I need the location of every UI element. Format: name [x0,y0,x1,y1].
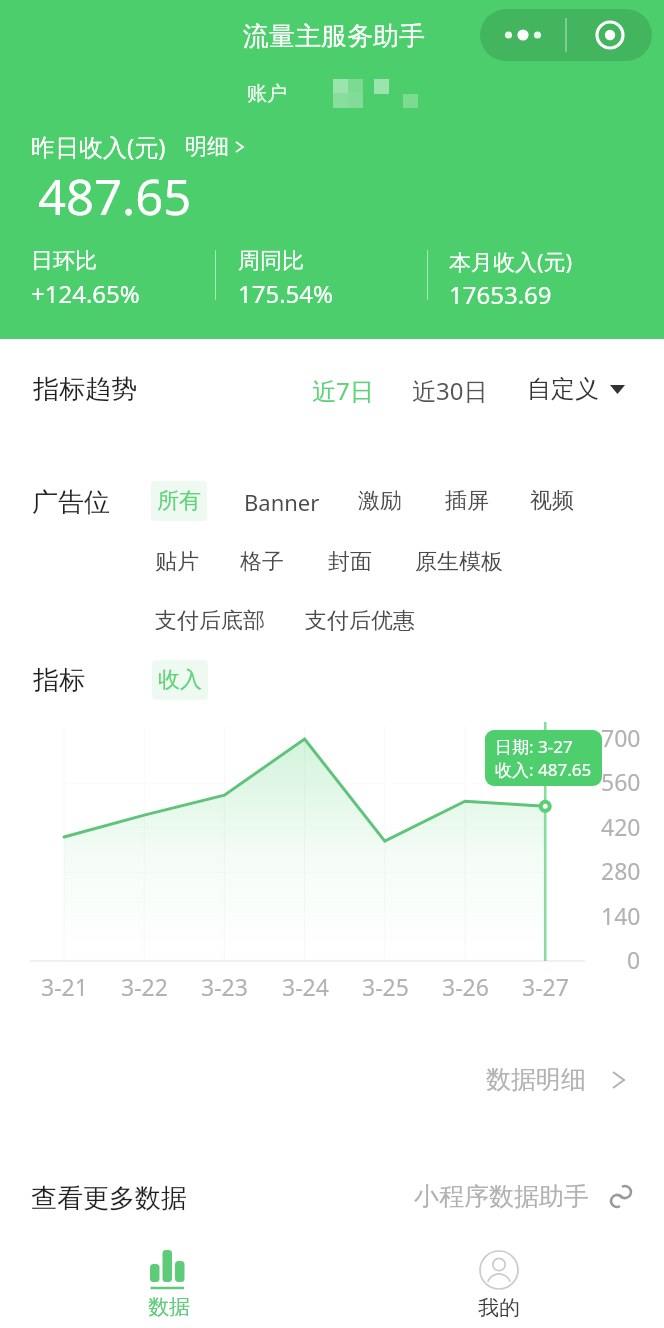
staticText: 140 [601,900,641,931]
staticText: 明细 [185,133,229,161]
staticText: 周同比 [238,247,304,275]
button[interactable]: 视频 [524,481,580,521]
staticText: 本月收入(元) [449,246,573,276]
button[interactable]: 封面 [322,542,378,582]
button[interactable]: 支付后优惠 [299,601,421,641]
staticText: 指标趋势 [33,373,137,406]
staticText: 格子 [240,548,284,576]
staticText: 700 [601,722,641,753]
staticText: 日环比 [31,247,97,275]
staticText: 3-23 [201,971,248,1002]
staticText: 流量主服务助手 [243,20,425,53]
staticText: 原生模板 [415,548,503,576]
staticText: 指标 [33,664,85,697]
staticText: +124.65% [31,277,140,310]
button[interactable]: 格子 [234,542,290,582]
staticText: 昨日收入(元) [31,130,166,163]
staticText: 插屏 [445,487,489,515]
staticText: 420 [601,811,641,842]
button[interactable]: 明细 [185,133,244,161]
button[interactable]: 原生模板 [409,542,509,582]
staticText: 3-24 [282,971,329,1002]
staticText: 查看更多数据 [31,1182,187,1215]
button[interactable]: 近7日 [304,367,382,414]
staticText: 280 [601,855,641,886]
button[interactable]: 插屏 [439,481,495,521]
staticText: 账户 [247,81,287,106]
staticText: 激励 [358,487,402,515]
staticText: 487.65 [38,163,192,230]
staticText: 收入: 487.65 [495,758,592,781]
staticText: 支付后优惠 [305,607,415,635]
staticText: 视频 [530,487,574,515]
staticText: 近7日 [312,374,374,407]
button[interactable]: 小程序数据助手 [410,1177,637,1216]
staticText: 近30日 [412,374,488,407]
staticText: 贴片 [155,548,199,576]
button[interactable]: 我的 [419,1240,579,1328]
staticText: 数据 [148,1294,190,1320]
staticText: 封面 [328,548,372,576]
staticText: 175.54% [238,277,334,310]
staticText: Banner [244,487,320,517]
staticText: 3-22 [121,971,168,1002]
button[interactable]: 近30日 [404,367,496,414]
button[interactable]: Banner [238,481,326,523]
staticText: 3-27 [522,971,569,1002]
staticText: 日期: 3-27 [495,735,573,758]
staticText: 我的 [478,1295,520,1321]
staticText: 3-26 [442,971,489,1002]
staticText: 3-21 [41,971,88,1002]
button[interactable]: 支付后底部 [149,601,271,641]
button[interactable]: 数据 [89,1240,249,1328]
button[interactable]: 激励 [352,481,408,521]
button[interactable]: 贴片 [149,542,205,582]
button[interactable]: 自定义 [519,367,633,411]
staticText: 支付后底部 [155,607,265,635]
staticText: 560 [601,766,641,797]
staticText: 数据明细 [486,1064,586,1095]
staticText: 自定义 [527,374,599,404]
staticText: 所有 [157,487,201,515]
button[interactable]: 收入 [152,660,208,700]
staticText: 0 [627,944,641,975]
staticText: 3-25 [362,971,409,1002]
staticText: 收入 [158,666,202,694]
button[interactable]: More options and close [480,9,652,61]
button[interactable]: 所有 [151,481,207,521]
button[interactable]: 数据明细 [480,1058,631,1101]
staticText: 广告位 [32,486,110,519]
staticText: 17653.69 [449,278,552,311]
staticText: 小程序数据助手 [414,1181,589,1212]
